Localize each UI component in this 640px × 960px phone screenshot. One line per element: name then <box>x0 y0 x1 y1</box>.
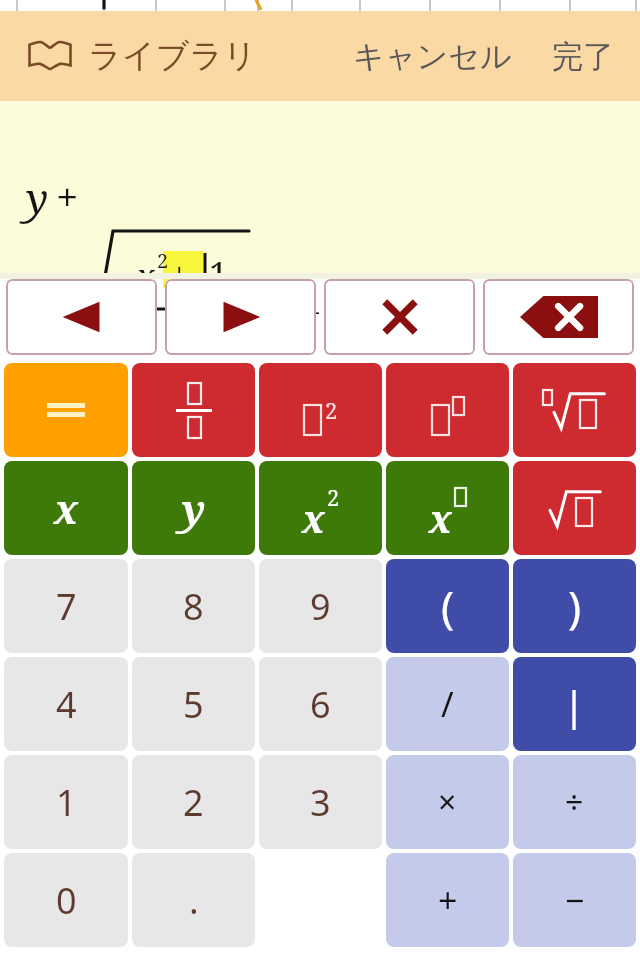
staticText: 2 <box>325 395 338 425</box>
button[interactable]: + <box>386 853 509 947</box>
staticText: 8 <box>183 582 204 631</box>
button[interactable]: ( <box>386 559 509 653</box>
staticText: x <box>136 253 155 299</box>
staticText: y <box>182 481 206 535</box>
button[interactable]: ÷ <box>513 755 636 849</box>
staticText: 1 <box>209 251 229 297</box>
staticText: 7 <box>56 582 77 631</box>
staticText: 2 <box>183 778 204 827</box>
staticText: 9 <box>310 582 331 631</box>
staticText: y <box>26 169 49 226</box>
button[interactable]: x <box>4 461 128 555</box>
staticText: 2 <box>327 482 340 512</box>
button[interactable]: 1 <box>4 755 128 849</box>
staticText: キャンセル <box>353 37 512 76</box>
staticText: + <box>56 169 79 223</box>
other: Library <box>28 40 72 72</box>
button[interactable]: x <box>386 461 509 555</box>
button[interactable]: − <box>513 853 636 947</box>
staticText: 5 <box>183 680 204 729</box>
button[interactable]: 完了 <box>546 27 620 86</box>
button[interactable]: 5 <box>132 657 255 751</box>
staticText: ライブラリ <box>88 35 257 77</box>
button[interactable]: × <box>386 755 509 849</box>
button[interactable]: 7 <box>4 559 128 653</box>
button[interactable]: Backspace <box>483 279 634 355</box>
staticText: 6 <box>310 680 331 729</box>
button[interactable] <box>132 363 255 457</box>
button[interactable]: Clear all <box>324 279 475 355</box>
button[interactable]: 9 <box>259 559 382 653</box>
staticText: 4 <box>56 680 77 729</box>
button[interactable]: 3 <box>259 755 382 849</box>
button[interactable]: . <box>132 853 255 947</box>
staticText: x <box>429 492 452 544</box>
button[interactable]: 2 <box>259 363 382 457</box>
staticText: 2 <box>157 247 169 274</box>
button[interactable]: 0 <box>4 853 128 947</box>
button[interactable]: x <box>259 461 382 555</box>
button[interactable]: | <box>513 657 636 751</box>
button[interactable]: 6 <box>259 657 382 751</box>
staticText: 完了 <box>552 37 614 76</box>
button[interactable]: 8 <box>132 559 255 653</box>
staticText: + <box>438 877 458 923</box>
staticText: 3 <box>310 778 331 827</box>
button[interactable]: 2 <box>132 755 255 849</box>
staticText: x <box>302 492 325 544</box>
staticText: x <box>54 481 79 535</box>
button[interactable]: キャンセル <box>345 27 520 86</box>
button[interactable]: y <box>132 461 255 555</box>
staticText: − <box>565 877 585 923</box>
staticText: 1 <box>56 778 77 827</box>
button[interactable]: Library <box>22 29 263 83</box>
button[interactable]: Move left <box>6 279 157 355</box>
staticText: ÷ <box>565 780 584 824</box>
button[interactable]: Move right <box>165 279 316 355</box>
staticText: 1 <box>300 271 323 325</box>
staticText: + <box>170 251 189 296</box>
staticText: = <box>266 275 287 324</box>
button[interactable]: ) <box>513 559 636 653</box>
button[interactable] <box>513 461 636 555</box>
button[interactable] <box>513 363 636 457</box>
staticText: / <box>441 681 454 727</box>
button[interactable]: / <box>386 657 509 751</box>
button[interactable] <box>4 363 128 457</box>
button[interactable] <box>386 363 509 457</box>
staticText: ) <box>568 576 582 636</box>
staticText: ( <box>441 576 455 636</box>
staticText: × <box>438 780 457 824</box>
staticText: 0 <box>56 876 77 925</box>
button[interactable]: 4 <box>4 657 128 751</box>
staticText: . <box>189 876 199 925</box>
staticText: 4 <box>172 309 192 355</box>
staticText: | <box>563 677 586 731</box>
